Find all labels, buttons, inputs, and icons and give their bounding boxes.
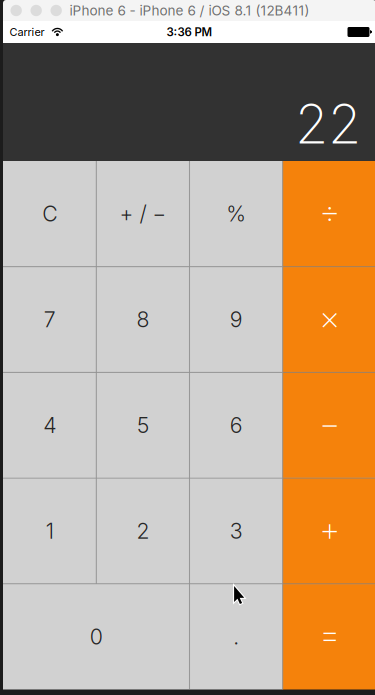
button[interactable]: 2 [96, 478, 189, 584]
button[interactable]: + / − [96, 161, 189, 267]
staticText: 7 [44, 307, 56, 332]
button[interactable]: = [283, 584, 375, 689]
button[interactable]: + [283, 478, 375, 584]
button[interactable]: 4 [3, 372, 96, 478]
staticText: 6 [230, 412, 243, 438]
button[interactable]: 7 [3, 267, 96, 372]
staticText: × [319, 297, 339, 338]
staticText: C [42, 201, 57, 227]
button[interactable]: C [3, 161, 96, 267]
button[interactable]: % [189, 161, 283, 267]
button[interactable]: 3 [189, 478, 283, 584]
staticText: 5 [137, 412, 149, 438]
staticText: 3:36 PM [166, 25, 212, 39]
staticText: 22 [295, 91, 361, 156]
button[interactable]: . [189, 584, 283, 689]
staticText: . [233, 624, 239, 649]
staticText: 9 [230, 307, 243, 332]
button[interactable]: 1 [3, 478, 96, 584]
staticText: = [319, 614, 339, 655]
button[interactable]: × [283, 267, 375, 372]
staticText: 1 [46, 518, 54, 544]
button[interactable]: Minimise [22, 5, 42, 16]
staticText: Carrier [9, 25, 44, 39]
staticText: % [226, 201, 246, 227]
button[interactable]: ÷ [283, 161, 375, 267]
button[interactable]: Zoom [42, 5, 62, 16]
button[interactable]: 6 [189, 372, 283, 478]
staticText: iPhone 6 - iPhone 6 / iOS 8.1 (12B411) [69, 2, 309, 19]
staticText: 3 [230, 518, 243, 544]
staticText: + [319, 509, 339, 549]
button[interactable]: 9 [189, 267, 283, 372]
staticText: 4 [43, 412, 56, 438]
staticText: 0 [90, 624, 103, 649]
staticText: − [319, 403, 339, 443]
button[interactable]: Close [10, 5, 22, 16]
button[interactable]: 0 [3, 584, 189, 689]
staticText: 2 [136, 518, 149, 544]
button[interactable]: − [283, 372, 375, 478]
staticText: + / − [119, 201, 166, 227]
staticText: 8 [136, 307, 149, 332]
staticText: ÷ [319, 192, 339, 232]
button[interactable]: 8 [96, 267, 189, 372]
button[interactable]: 5 [96, 372, 189, 478]
